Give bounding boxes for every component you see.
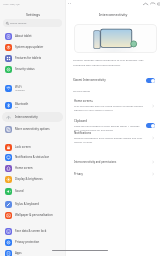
button[interactable]: Privacy (66, 169, 160, 179)
button[interactable]: Display & brightness (2, 174, 63, 184)
button[interactable]: Home screen+ (66, 98, 160, 113)
button[interactable]: Wi-Fi (2, 83, 63, 93)
staticText: Lock screen (15, 145, 31, 149)
button[interactable]: Security status (2, 64, 63, 74)
other: Open (151, 160, 155, 164)
staticText: Personal devices (73, 90, 91, 93)
staticText: About tablet (15, 34, 32, 38)
button[interactable]: Search settings (3, 19, 62, 27)
staticText: Search settings (10, 22, 27, 25)
staticText: Display & brightness (15, 177, 43, 181)
staticText: More connectivity options (15, 127, 50, 131)
staticText: Features for tablets (15, 56, 42, 60)
button[interactable]: Lock screen (2, 142, 63, 152)
staticText: Sound (15, 189, 24, 193)
button[interactable]: Bluetooth (2, 100, 63, 110)
staticText: Clipboard (74, 119, 87, 123)
staticText: Face data & screen lock (15, 229, 47, 233)
other: Open (151, 136, 155, 140)
button[interactable]: Interconnectivity and permissions (66, 157, 160, 167)
button[interactable]: Home screen (2, 163, 63, 173)
staticText: On (15, 106, 19, 109)
button[interactable]: More connectivity options (2, 124, 63, 134)
button[interactable]: System apps updater (2, 42, 63, 52)
staticText: Notifications (74, 131, 92, 135)
staticText: Interconnectivity and permissions (74, 160, 151, 164)
button[interactable]: Wallpaper & personalisation (2, 210, 63, 220)
staticText: System apps updater (15, 45, 44, 49)
staticText: Home screen (15, 166, 33, 170)
staticText: • • (68, 2, 71, 6)
staticText: Stylus & keyboard (15, 202, 39, 206)
button[interactable]: Apps (2, 248, 63, 256)
other: Open (151, 104, 155, 108)
staticText: Notifications & status bar (15, 155, 50, 159)
staticText: Security status (15, 67, 35, 71)
button[interactable]: Face data & screen lock (2, 226, 63, 236)
staticText: Bluetooth (15, 102, 29, 106)
button[interactable]: Clipboard (66, 118, 160, 133)
button[interactable]: Xiaomi Interconnectivity (66, 75, 160, 85)
staticText: Unpaired (15, 89, 25, 92)
staticText: Interconnectivity (15, 115, 38, 119)
staticText: Xiaomi Interconnectivity (73, 78, 146, 82)
button[interactable]: Privacy protection (2, 237, 63, 247)
staticText: Apps (15, 251, 22, 255)
staticText: Home screen+ (74, 99, 94, 103)
staticText: Settings (26, 12, 40, 17)
staticText: Wallpaper & personalisation (15, 213, 53, 217)
button[interactable]: Notifications & status bar (2, 152, 63, 162)
staticText: Privacy protection (15, 240, 40, 244)
button[interactable]: Stylus & keyboard (2, 199, 63, 209)
button[interactable]: Interconnectivity (2, 112, 63, 122)
staticText: Receive notifications from nearby device… (74, 136, 143, 144)
button[interactable]: Notifications (66, 130, 160, 145)
staticText: 10:35 Wed, 7 Jul (3, 3, 20, 6)
staticText: Sync and interact with the Home screens … (74, 104, 143, 112)
staticText: Privacy (74, 172, 151, 176)
other: Open (151, 172, 155, 176)
staticText: Paste text and images to other devices w… (74, 124, 143, 132)
button[interactable]: Features for tablets (2, 53, 63, 63)
staticText: Wi-Fi (15, 85, 22, 89)
staticText: Discover seamless device integration at … (73, 58, 155, 66)
staticText: Interconnectivity (99, 12, 128, 17)
button[interactable]: Sound (2, 186, 63, 196)
button[interactable]: About tablet (2, 31, 63, 41)
